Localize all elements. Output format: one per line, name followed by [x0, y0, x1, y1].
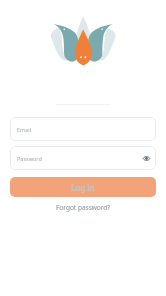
staticText: Password: [17, 155, 42, 162]
staticText: Email: [17, 126, 32, 133]
staticText: Log in: [71, 182, 95, 193]
button[interactable]: Password: [10, 146, 156, 170]
button[interactable]: Email: [10, 117, 156, 141]
button[interactable]: Log in: [10, 177, 156, 197]
button[interactable]: Show password: [141, 153, 152, 164]
button[interactable]: Forgot password?: [52, 201, 115, 214]
staticText: Forgot password?: [56, 203, 111, 212]
